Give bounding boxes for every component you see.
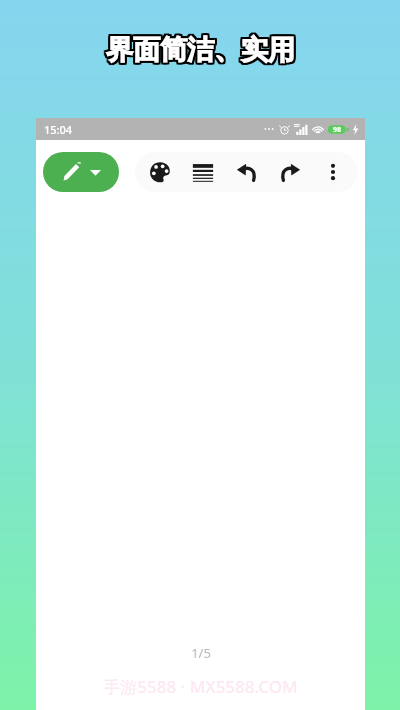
staticText: 手游5588 · MX5588.COM	[103, 675, 298, 698]
staticText: 界面简洁、实用	[104, 35, 293, 69]
button[interactable]: Stroke width	[185, 154, 221, 190]
staticText: 15:04	[44, 122, 73, 137]
staticText: 界面简洁、实用	[104, 31, 293, 65]
staticText: 界面简洁、实用	[108, 31, 297, 65]
staticText: 界面简洁、实用	[108, 33, 297, 67]
button[interactable]: More options	[315, 154, 351, 190]
staticText: 界面简洁、实用	[104, 32, 293, 66]
staticText: 界面简洁、实用	[108, 34, 297, 68]
button[interactable]: Pen tool	[43, 152, 119, 192]
button[interactable]: Undo	[229, 154, 265, 190]
staticText: 界面简洁、实用	[104, 33, 293, 67]
staticText: 界面简洁、实用	[105, 35, 294, 69]
staticText: 界面简洁、实用	[106, 35, 295, 69]
staticText: 界面简洁、实用	[107, 31, 296, 65]
staticText: 界面简洁、实用	[105, 31, 294, 65]
button[interactable]: Color palette	[142, 154, 178, 190]
staticText: 界面简洁、实用	[104, 34, 293, 68]
staticText: 界面简洁、实用	[106, 33, 295, 67]
staticText: 界面简洁、实用	[106, 31, 295, 65]
staticText: 1/5	[191, 644, 211, 662]
staticText: 界面简洁、实用	[107, 35, 296, 69]
button[interactable]: Redo	[272, 154, 308, 190]
staticText: 98	[333, 125, 342, 135]
staticText: 界面简洁、实用	[108, 32, 297, 66]
staticText: 界面简洁、实用	[108, 35, 297, 69]
